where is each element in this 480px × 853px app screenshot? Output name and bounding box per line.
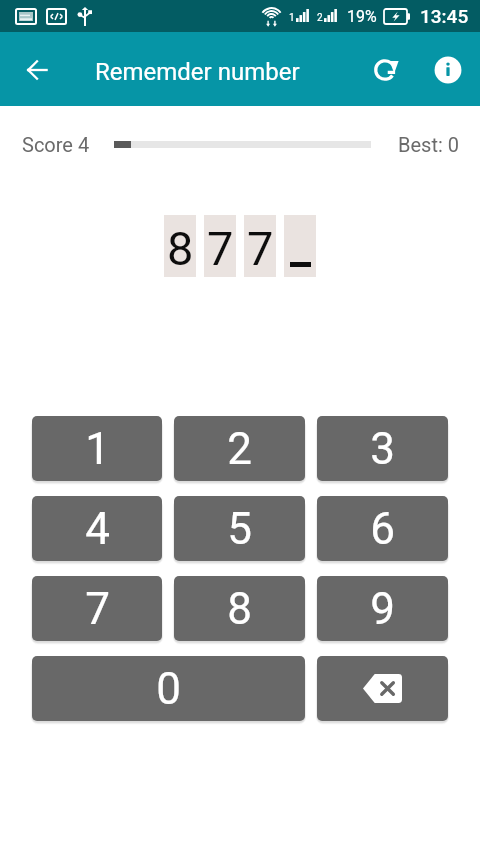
button[interactable]: 0	[32, 656, 305, 721]
button[interactable]: Back	[16, 49, 58, 91]
button[interactable]: 3	[317, 416, 448, 481]
button[interactable]: 7	[32, 576, 162, 641]
staticText: 1	[289, 12, 295, 24]
staticText: 13:45	[420, 5, 469, 27]
button[interactable]: 8	[174, 576, 305, 641]
staticText: 7	[247, 221, 274, 276]
button[interactable]: 9	[317, 576, 448, 641]
staticText: 3	[370, 423, 395, 475]
button[interactable]: 2	[174, 416, 305, 481]
staticText: 8	[227, 583, 252, 635]
button[interactable]: 5	[174, 496, 305, 561]
staticText: Best: 0	[398, 133, 459, 156]
button[interactable]: 6	[317, 496, 448, 561]
staticText: 19%	[347, 7, 377, 26]
staticText: 6	[370, 503, 395, 555]
button[interactable]: Info	[426, 48, 470, 92]
staticText: 9	[370, 583, 395, 635]
button[interactable]: Backspace	[317, 656, 448, 721]
staticText: 0	[156, 663, 181, 715]
staticText: 2	[227, 423, 252, 475]
button[interactable]: 4	[32, 496, 162, 561]
staticText: 5	[227, 503, 252, 555]
staticText: 8	[167, 221, 194, 276]
staticText: 2	[317, 12, 323, 24]
staticText: 1	[85, 423, 110, 475]
staticText: 7	[85, 583, 110, 635]
button[interactable]: Restart	[364, 48, 408, 92]
staticText: 4	[85, 503, 110, 555]
button[interactable]: 1	[32, 416, 162, 481]
staticText: 7	[207, 221, 234, 276]
staticText: Rememder number	[95, 58, 300, 86]
staticText: Score 4	[22, 133, 90, 156]
